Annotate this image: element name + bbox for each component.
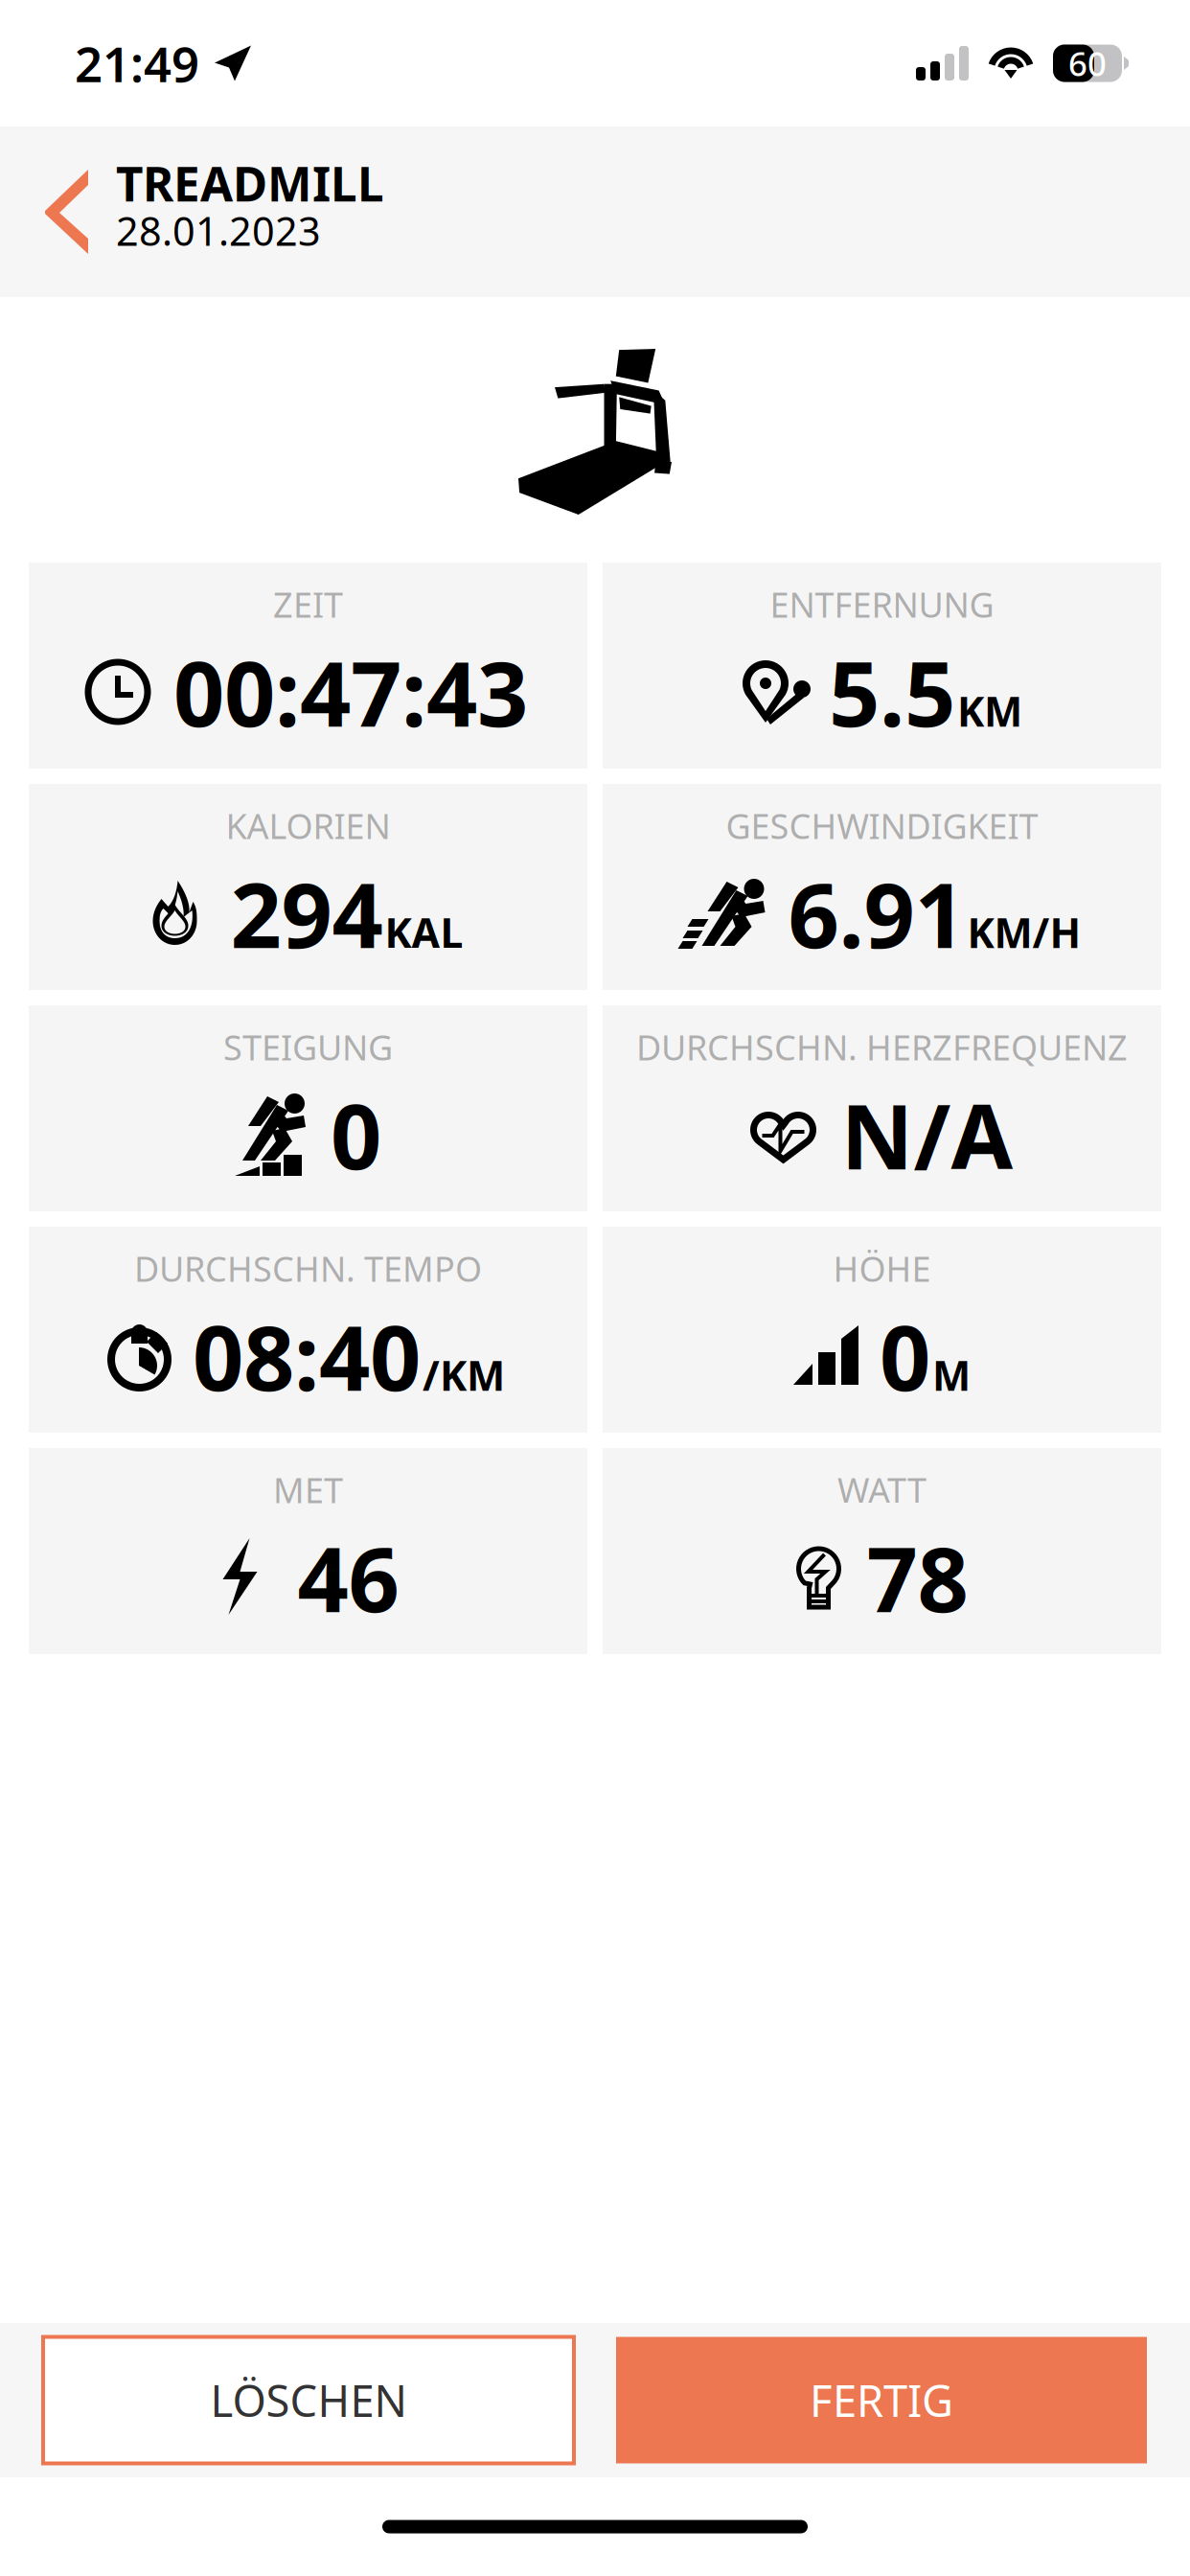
- staticText: 0: [880, 1297, 930, 1415]
- staticText: 00:47:43: [173, 632, 528, 751]
- staticText: 46: [297, 1518, 399, 1637]
- staticText: 294: [230, 854, 383, 973]
- staticText: DURCHSCHN. HERZFREQUENZ: [636, 1024, 1128, 1070]
- staticText: 08:40: [193, 1297, 421, 1415]
- staticText: TREADMILL: [116, 152, 384, 214]
- staticText: /KM: [423, 1348, 505, 1402]
- staticText: DURCHSCHN. TEMPO: [134, 1245, 482, 1291]
- staticText: STEIGUNG: [223, 1024, 393, 1070]
- staticText: N/A: [841, 1075, 1013, 1194]
- staticText: KM/H: [967, 905, 1081, 959]
- staticText: WATT: [837, 1467, 927, 1513]
- staticText: 28.01.2023: [116, 204, 321, 257]
- staticText: MET: [273, 1467, 343, 1513]
- button[interactable]: FERTIG: [616, 2337, 1147, 2463]
- staticText: FERTIG: [810, 2371, 953, 2429]
- staticText: 6.91: [788, 854, 965, 973]
- staticText: 60: [1068, 41, 1107, 85]
- button[interactable]: Back: [0, 127, 116, 296]
- staticText: LÖSCHEN: [210, 2371, 407, 2429]
- staticText: KAL: [385, 905, 463, 959]
- staticText: 0: [331, 1075, 381, 1194]
- staticText: 5.5: [829, 632, 955, 751]
- staticText: M: [932, 1348, 971, 1402]
- staticText: 21:49: [75, 31, 199, 96]
- staticText: ZEIT: [273, 581, 343, 627]
- button[interactable]: LÖSCHEN: [43, 2337, 574, 2463]
- staticText: KALORIEN: [226, 803, 390, 849]
- staticText: KM: [957, 684, 1022, 738]
- staticText: HÖHE: [833, 1245, 931, 1291]
- staticText: 78: [867, 1518, 968, 1637]
- staticText: GESCHWINDIGKEIT: [726, 803, 1038, 849]
- staticText: ENTFERNUNG: [770, 581, 994, 627]
